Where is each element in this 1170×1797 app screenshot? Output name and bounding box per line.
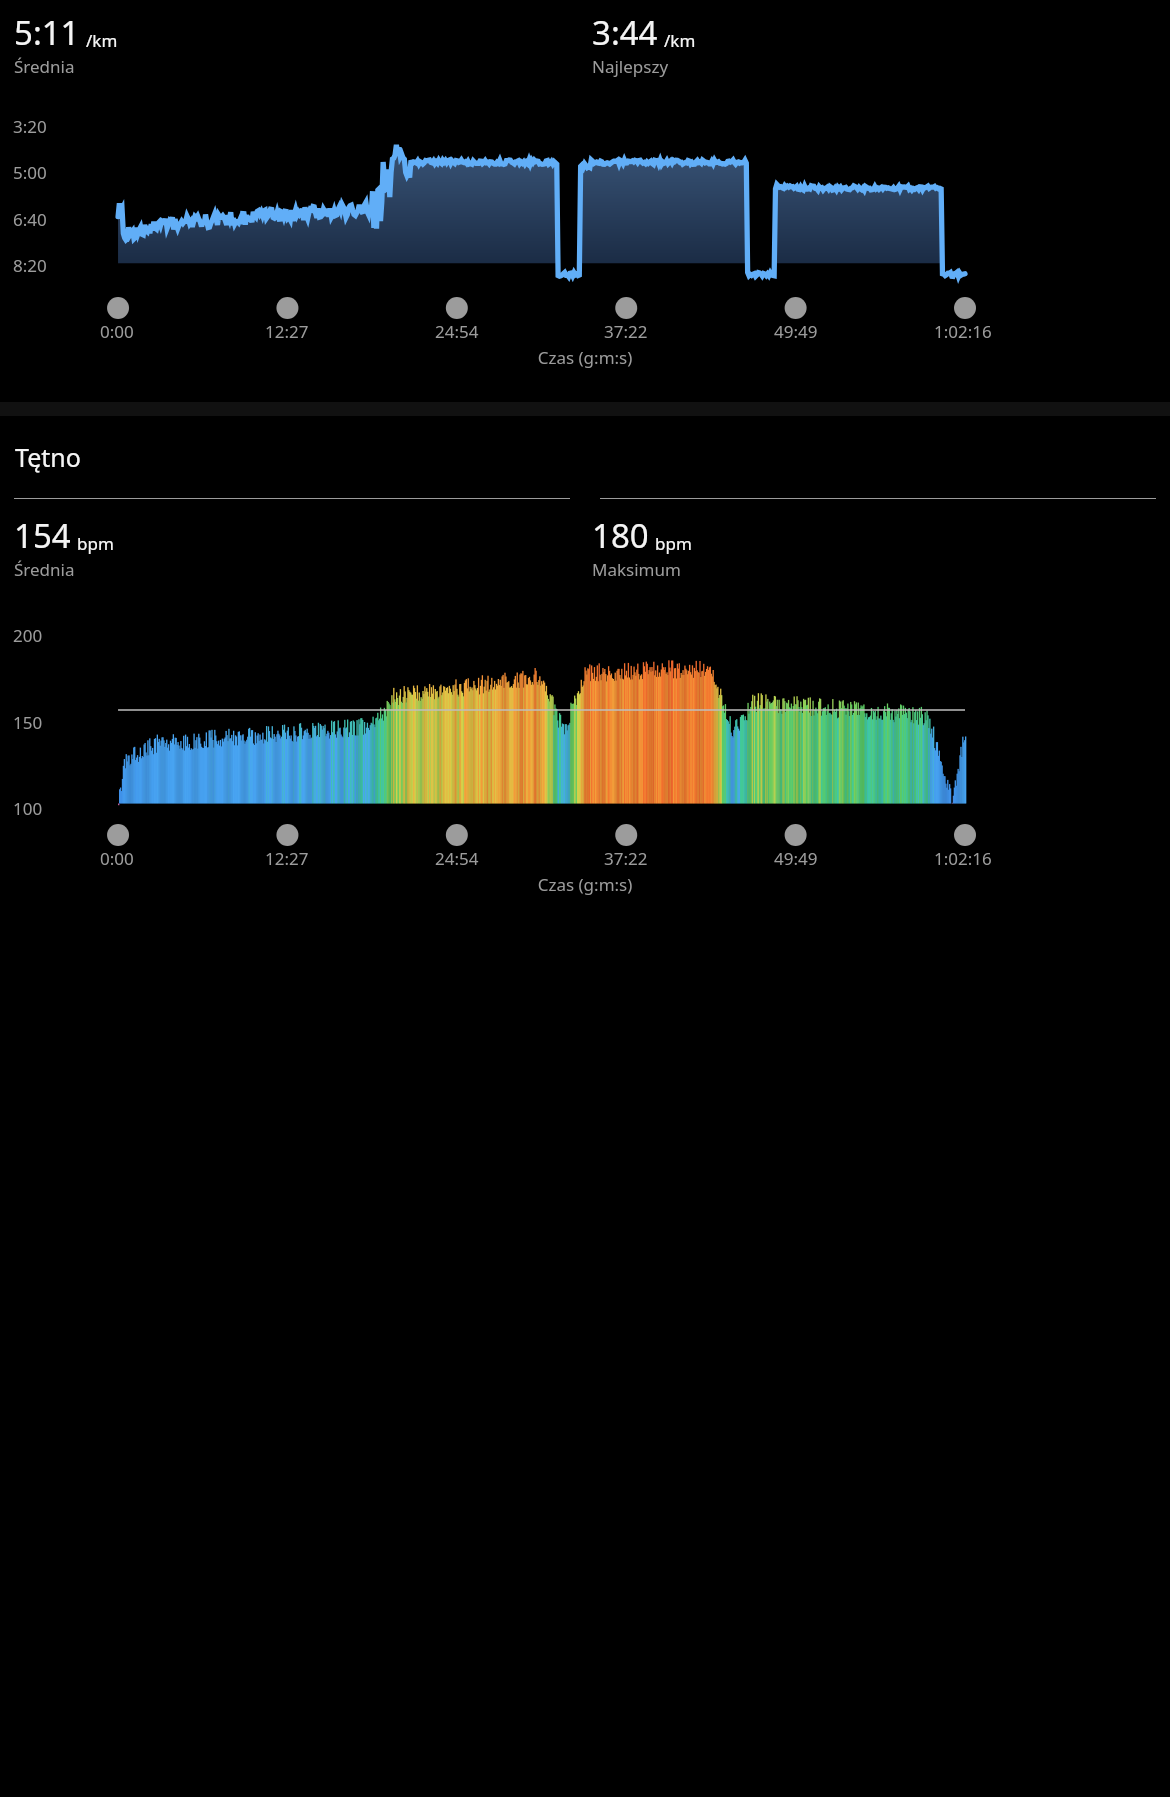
staticText: bpm — [77, 532, 114, 555]
staticText: 6:40 — [13, 208, 47, 231]
staticText: 49:49 — [774, 320, 818, 343]
staticText: 12:27 — [265, 847, 309, 870]
staticText: 154 — [14, 513, 71, 558]
button[interactable]: 5:11 — [14, 10, 592, 78]
staticText: 0:00 — [100, 847, 134, 870]
staticText: 100 — [13, 797, 43, 820]
staticText: 5:11 — [14, 10, 80, 55]
staticText: 3:44 — [592, 10, 658, 55]
staticText: 8:20 — [13, 254, 47, 277]
staticText: Średnia — [14, 55, 75, 78]
button[interactable]: 0:00 — [0, 294, 1170, 346]
staticText: 1:02:16 — [934, 847, 992, 870]
button[interactable]: 180 — [592, 513, 1170, 581]
staticText: Maksimum — [592, 558, 681, 581]
staticText: Średnia — [14, 558, 75, 581]
staticText: 0:00 — [100, 320, 134, 343]
staticText: 180 — [592, 513, 649, 558]
staticText: 24:54 — [435, 320, 479, 343]
staticText: 150 — [13, 711, 43, 734]
staticText: 200 — [13, 624, 43, 647]
staticText: /km — [664, 29, 696, 52]
staticText: Czas (g:m:s) — [0, 873, 1170, 896]
staticText: 24:54 — [435, 847, 479, 870]
staticText: 5:00 — [13, 161, 47, 184]
staticText: Tętno — [15, 440, 81, 474]
button[interactable]: 0:00 — [0, 821, 1170, 873]
staticText: 1:02:16 — [934, 320, 992, 343]
staticText: 37:22 — [604, 847, 648, 870]
staticText: 37:22 — [604, 320, 648, 343]
button[interactable]: 154 — [14, 513, 592, 581]
staticText: Najlepszy — [592, 55, 669, 78]
staticText: 12:27 — [265, 320, 309, 343]
staticText: 3:20 — [13, 115, 47, 138]
staticText: 49:49 — [774, 847, 818, 870]
button[interactable]: 3:44 — [592, 10, 1170, 78]
staticText: /km — [86, 29, 118, 52]
staticText: bpm — [655, 532, 692, 555]
staticText: Czas (g:m:s) — [0, 346, 1170, 369]
